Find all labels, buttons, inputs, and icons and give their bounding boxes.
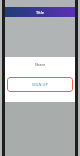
staticText: Share bbox=[5, 62, 75, 67]
button[interactable]: SIGN UP bbox=[7, 77, 73, 92]
staticText: Title bbox=[36, 10, 44, 15]
staticText: SIGN UP bbox=[32, 82, 48, 87]
